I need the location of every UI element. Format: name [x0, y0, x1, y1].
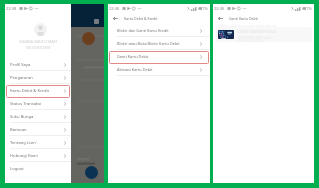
- staticText: GANDA SAHI UTAMI: [5, 39, 71, 44]
- button[interactable]: Pengaturan: [5, 71, 71, 84]
- staticText: Bantuan: [10, 127, 27, 133]
- staticText: 22:36: [109, 6, 120, 11]
- button[interactable]: Ganti Kartu Debit: [108, 50, 210, 63]
- button[interactable]: Back: [216, 14, 224, 22]
- staticText: Kartu Debit & Kredit: [10, 88, 50, 94]
- staticText: Suku Bunga: [10, 114, 34, 120]
- button[interactable]: Blokir atau Buka Blokir Kartu Debit: [108, 37, 210, 50]
- staticText: Aktivasi Kartu Debit: [117, 67, 153, 72]
- staticText: 4616 XXXX XXXX 1234: [238, 35, 272, 39]
- staticText: Blokir dan Ganti Kartu Kredit: [117, 28, 169, 33]
- button[interactable]: Profil Saya: [5, 58, 71, 71]
- staticText: Silakan pilih kartu yang ingin diganti: [218, 23, 276, 28]
- button[interactable]: Status Transaksi: [5, 97, 71, 110]
- staticText: Hubungi Kami: [10, 153, 38, 159]
- staticText: 22:36: [214, 6, 225, 11]
- button[interactable]: Aktivasi Kartu Debit: [108, 63, 210, 76]
- staticText: 22:38: [6, 6, 17, 11]
- button[interactable]: Tentang Livin': [5, 136, 71, 149]
- staticText: Tentang Livin': [10, 140, 37, 146]
- staticText: Ganti Kartu Debit: [229, 16, 258, 21]
- button[interactable]: Hubungi Kami: [5, 149, 71, 162]
- button[interactable]: Logout: [5, 162, 71, 175]
- staticText: Status Transaksi: [10, 101, 42, 107]
- staticText: 081234567890: [5, 45, 71, 50]
- staticText: Ganti Kartu Debit: [117, 54, 149, 59]
- staticText: Kartu Debit & Kredit: [124, 16, 158, 21]
- staticText: DEBIT MANDIRI GOLD: [238, 29, 277, 34]
- button[interactable]: Kartu Debit & Kredit: [5, 84, 71, 97]
- staticText: 31%: [200, 6, 208, 11]
- staticText: Logout: [10, 166, 24, 172]
- staticText: 31%: [304, 6, 312, 11]
- button[interactable]: DEBIT MANDIRI GOLD: [216, 27, 312, 42]
- button[interactable]: Bantuan: [5, 123, 71, 136]
- button[interactable]: Back: [111, 14, 119, 22]
- staticText: Profil Saya: [10, 62, 31, 68]
- button[interactable]: Blokir dan Ganti Kartu Kredit: [108, 24, 210, 37]
- staticText: Pengaturan: [10, 75, 33, 81]
- button[interactable]: Suku Bunga: [5, 110, 71, 123]
- staticText: Blokir atau Buka Blokir Kartu Debit: [117, 41, 180, 46]
